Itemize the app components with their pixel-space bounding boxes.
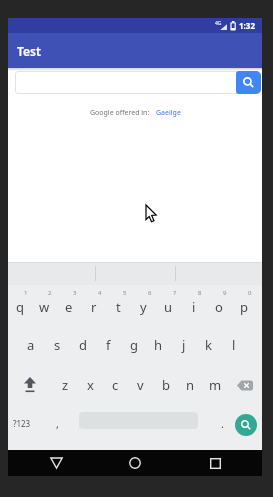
staticText: e [65, 298, 73, 316]
staticText: n [186, 376, 195, 394]
staticText: h [154, 336, 163, 354]
button[interactable]: r [81, 287, 106, 327]
staticText: 7 [173, 289, 177, 297]
staticText: x [87, 376, 94, 394]
staticText: , [56, 416, 59, 431]
staticText: 1:32 [239, 20, 255, 31]
staticText: Google offered in: [90, 108, 150, 118]
button[interactable]: a [18, 325, 44, 365]
staticText: u [164, 298, 173, 316]
staticText: ?123 [13, 418, 31, 429]
staticText: y [140, 298, 147, 316]
button[interactable]: l [221, 325, 246, 365]
staticText: q [16, 298, 24, 316]
staticText: 6 [148, 289, 152, 297]
button[interactable]: m [203, 365, 228, 405]
staticText: 1 [24, 289, 28, 297]
button[interactable]: j [171, 325, 196, 365]
staticText: c [112, 376, 119, 394]
staticText: o [215, 298, 223, 316]
button[interactable] [15, 71, 261, 94]
button[interactable]: e [56, 287, 81, 327]
button[interactable]: i [181, 287, 206, 327]
staticText: 2 [48, 289, 52, 297]
button[interactable]: v [128, 365, 153, 405]
button[interactable] [235, 414, 257, 436]
staticText: k [205, 336, 212, 354]
button[interactable]: c [103, 365, 128, 405]
button[interactable]: h [146, 325, 171, 365]
staticText: 4 [98, 289, 102, 297]
button[interactable]: p [231, 287, 256, 327]
button[interactable]: z [52, 365, 78, 405]
button[interactable]: w [32, 287, 56, 327]
button[interactable]: Gaeilge [156, 108, 181, 118]
staticText: . [221, 416, 224, 431]
staticText: 3 [73, 289, 77, 297]
staticText: f [106, 336, 111, 354]
staticText: p [240, 298, 248, 316]
staticText: 0 [248, 289, 252, 297]
staticText: j [182, 336, 186, 354]
staticText: Test [17, 43, 41, 59]
button[interactable] [36, 450, 76, 476]
button[interactable]: f [96, 325, 121, 365]
staticText: g [130, 336, 138, 354]
staticText: z [62, 376, 69, 394]
staticText: 4G [215, 20, 222, 27]
staticText: a [27, 336, 35, 354]
button[interactable]: ?123 [8, 415, 36, 431]
staticText: t [116, 298, 121, 316]
staticText: l [232, 336, 236, 354]
button[interactable] [195, 450, 235, 476]
button[interactable]: u [156, 287, 181, 327]
button[interactable]: n [178, 365, 203, 405]
button[interactable]: g [121, 325, 146, 365]
button[interactable]: d [70, 325, 96, 365]
staticText: d [79, 336, 87, 354]
button[interactable]: x [78, 365, 103, 405]
button[interactable]: y [131, 287, 156, 327]
staticText: 9 [223, 289, 227, 297]
button[interactable]: , [49, 413, 65, 433]
staticText: r [91, 298, 97, 316]
button[interactable]: k [196, 325, 221, 365]
staticText: 8 [198, 289, 202, 297]
staticText: s [54, 336, 61, 354]
staticText: v [137, 376, 144, 394]
staticText: w [39, 298, 50, 316]
button[interactable]: . [214, 413, 230, 433]
staticText: m [209, 376, 222, 394]
button[interactable] [236, 71, 261, 94]
staticText: 5 [123, 289, 127, 297]
button[interactable]: q [8, 287, 32, 327]
button[interactable] [228, 365, 262, 405]
staticText: b [162, 376, 170, 394]
button[interactable] [115, 450, 155, 476]
button[interactable] [8, 365, 52, 405]
button[interactable]: o [206, 287, 231, 327]
button[interactable]: t [106, 287, 131, 327]
staticText: i [192, 298, 196, 316]
button[interactable]: s [44, 325, 70, 365]
button[interactable]: b [153, 365, 178, 405]
